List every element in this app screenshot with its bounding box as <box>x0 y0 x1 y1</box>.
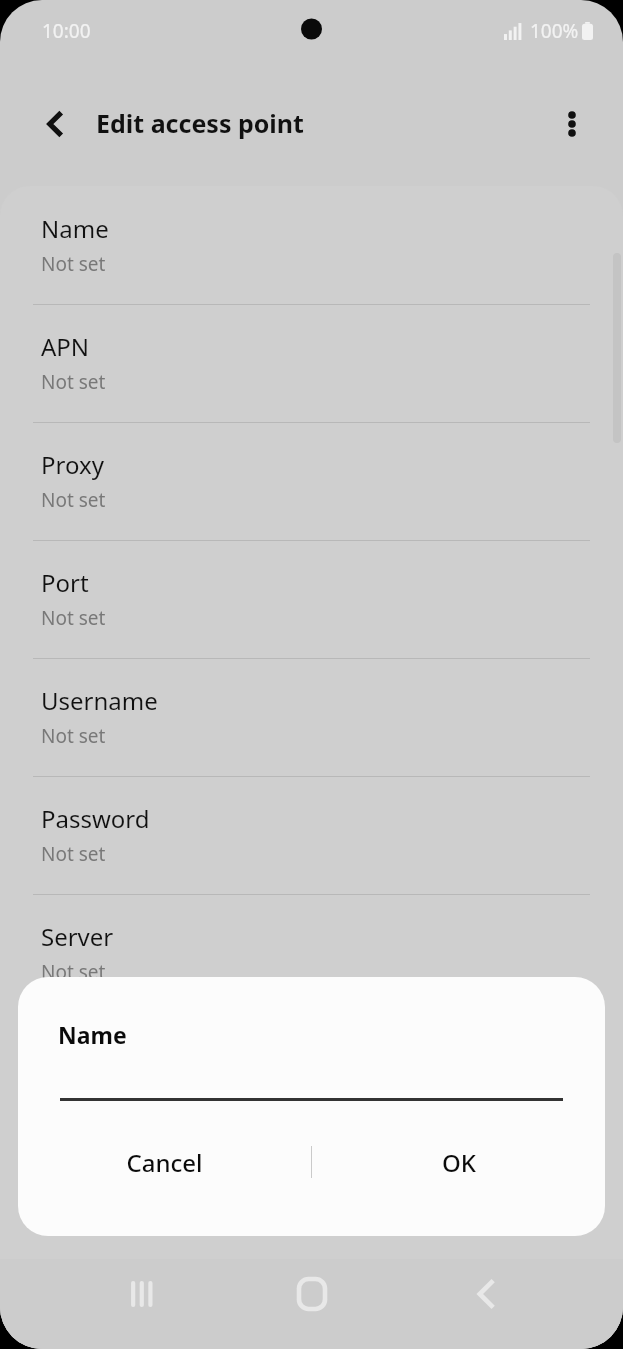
button[interactable]: Cancel <box>18 1127 311 1197</box>
staticText: Server <box>41 920 114 953</box>
button[interactable]: Port <box>0 540 623 658</box>
staticText: Password <box>41 802 150 835</box>
staticText: Edit access point <box>96 106 304 140</box>
button[interactable]: Username <box>0 658 623 776</box>
staticText: 100% <box>530 18 579 44</box>
staticText: Name <box>58 1019 127 1050</box>
staticText: Cancel <box>126 1146 203 1179</box>
staticText: Proxy <box>41 448 104 481</box>
staticText: Not set <box>41 369 106 395</box>
button[interactable]: Back <box>447 1254 527 1334</box>
button[interactable]: More options <box>544 96 600 152</box>
button[interactable]: Back <box>28 96 84 152</box>
button[interactable]: Home <box>272 1254 352 1334</box>
button[interactable]: MMSC <box>0 1012 623 1130</box>
staticText: Not set <box>41 723 106 749</box>
staticText: Not set <box>41 841 106 867</box>
staticText: Not set <box>41 1077 106 1103</box>
staticText: Not set <box>41 605 106 631</box>
button[interactable]: APN <box>0 304 623 422</box>
staticText: Not set <box>41 251 106 277</box>
staticText: Port <box>41 566 89 599</box>
button[interactable]: Proxy <box>0 422 623 540</box>
staticText: Name <box>41 212 109 245</box>
button[interactable]: OK <box>312 1127 605 1197</box>
staticText: MMSC <box>41 1038 113 1071</box>
button[interactable]: Name <box>0 186 623 304</box>
button[interactable]: Recent apps <box>100 1254 180 1334</box>
button[interactable]: Password <box>0 776 623 894</box>
staticText: Not set <box>41 487 106 513</box>
staticText: OK <box>442 1146 476 1179</box>
staticText: Not set <box>41 959 106 985</box>
button[interactable]: Server <box>0 894 623 1012</box>
staticText: 10:00 <box>42 18 91 44</box>
staticText: APN <box>41 330 90 363</box>
staticText: Username <box>41 684 158 717</box>
